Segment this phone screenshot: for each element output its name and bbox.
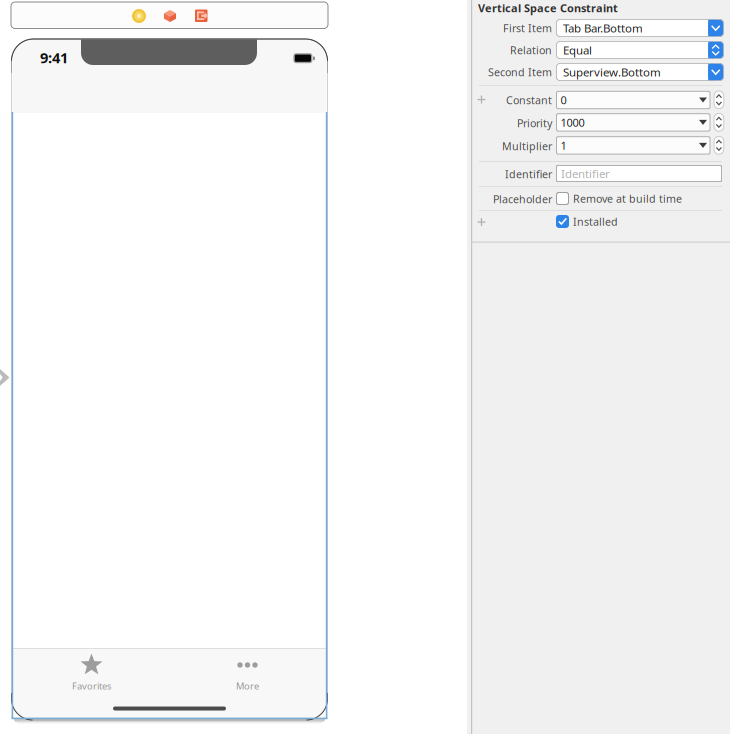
- staticText: 9:41: [40, 47, 68, 67]
- staticText: Equal: [563, 42, 592, 58]
- staticText: Constant: [506, 93, 552, 107]
- staticText: More: [236, 680, 259, 692]
- staticText: Placeholder: [493, 192, 552, 206]
- button[interactable]: More: [0, 0, 730, 734]
- staticText: Vertical Space Constraint: [478, 1, 618, 15]
- staticText: 1000: [561, 115, 585, 130]
- button[interactable]: Stepper: [0, 0, 730, 734]
- staticText: Identifier: [505, 167, 552, 181]
- button[interactable]: First Responder: [0, 0, 730, 734]
- staticText: Relation: [510, 43, 552, 57]
- button[interactable]: Installed: [0, 0, 730, 734]
- staticText: First Item: [503, 21, 552, 35]
- staticText: 0: [561, 92, 567, 108]
- staticText: Superview.Bottom: [563, 64, 661, 80]
- button[interactable]: Superview.Bottom: [0, 0, 730, 734]
- staticText: Favorites: [72, 680, 111, 692]
- staticText: Multiplier: [502, 139, 552, 153]
- button[interactable]: 1: [0, 0, 730, 734]
- button[interactable]: Tab Bar.Bottom: [0, 0, 730, 734]
- button[interactable]: Favorites: [0, 0, 730, 734]
- button[interactable]: Stepper: [0, 0, 730, 734]
- staticText: Installed: [573, 214, 618, 229]
- staticText: 1: [561, 138, 567, 153]
- button[interactable]: Exit: [0, 0, 730, 734]
- staticText: Second Item: [488, 65, 552, 79]
- staticText: Remove at build time: [573, 191, 682, 206]
- button[interactable]: Identifier: [0, 0, 730, 734]
- button[interactable]: Equal: [0, 0, 730, 734]
- button[interactable]: 1000: [0, 0, 730, 734]
- button[interactable]: 0: [0, 0, 730, 734]
- button[interactable]: View Controller: [0, 0, 730, 734]
- staticText: Tab Bar.Bottom: [563, 20, 643, 36]
- staticText: Priority: [517, 116, 552, 130]
- button[interactable]: Stepper: [0, 0, 730, 734]
- staticText: Identifier: [561, 166, 610, 181]
- button[interactable]: Remove at build time: [0, 0, 730, 734]
